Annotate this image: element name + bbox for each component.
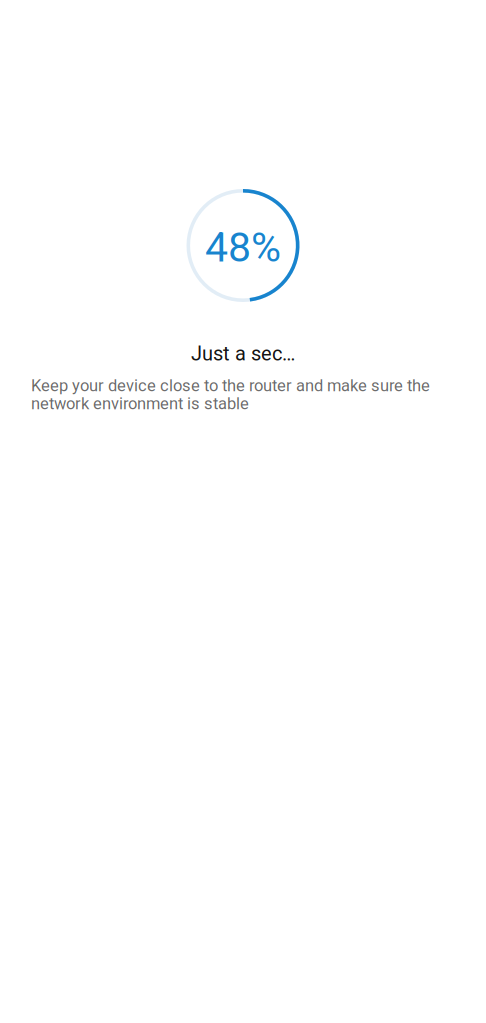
staticText: 48% <box>205 223 281 271</box>
staticText: Just a sec… <box>191 342 295 365</box>
staticText: Keep your device close to the router and… <box>31 376 430 413</box>
